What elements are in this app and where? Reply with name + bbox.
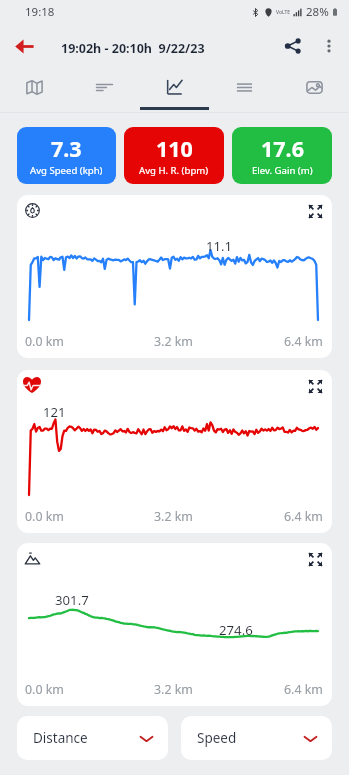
staticText: 28% xyxy=(306,4,329,20)
staticText: 7.3 xyxy=(51,134,82,163)
staticText: 121 xyxy=(43,403,66,421)
staticText: 274.6 xyxy=(219,621,253,639)
staticText: 19:02h - 20:10h 9/22/23 xyxy=(61,40,205,57)
staticText: 0.0 km xyxy=(25,508,64,525)
staticText: 6.4 km xyxy=(284,508,323,525)
button[interactable]: Speed xyxy=(181,716,332,760)
staticText: 110 xyxy=(156,134,193,163)
staticText: VoLTE xyxy=(276,9,291,16)
button[interactable]: Expand chart xyxy=(17,370,332,533)
button[interactable]: Splits xyxy=(69,65,139,113)
staticText: Distance xyxy=(33,729,88,747)
button[interactable]: Back xyxy=(5,27,43,65)
staticText: 301.7 xyxy=(55,591,89,609)
staticText: Avg Speed (kph) xyxy=(30,164,103,177)
staticText: 19:18 xyxy=(25,4,55,20)
button[interactable]: Expand chart xyxy=(17,195,332,358)
button[interactable]: 110 xyxy=(124,127,224,184)
button[interactable]: Expand chart xyxy=(301,197,329,225)
staticText: Avg H. R. (bpm) xyxy=(139,164,209,177)
button[interactable]: 7.3 xyxy=(17,127,116,184)
staticText: Speed xyxy=(197,729,237,747)
button[interactable]: Expand chart xyxy=(301,545,329,573)
staticText: 0.0 km xyxy=(25,333,64,350)
staticText: 0.0 km xyxy=(25,681,64,698)
button[interactable]: Charts xyxy=(139,65,209,113)
button[interactable]: Details xyxy=(209,65,279,113)
button[interactable]: Distance xyxy=(17,716,168,760)
staticText: 3.2 km xyxy=(154,508,193,525)
staticText: 3.2 km xyxy=(154,333,193,350)
staticText: 6.4 km xyxy=(284,681,323,698)
button[interactable]: Expand chart xyxy=(301,372,329,400)
staticText: Elev. Gain (m) xyxy=(252,164,313,177)
button[interactable]: Photos xyxy=(279,65,349,113)
staticText: 11.1 xyxy=(206,237,233,255)
staticText: 3.2 km xyxy=(154,681,193,698)
button[interactable]: More options xyxy=(312,29,346,63)
staticText: 17.6 xyxy=(261,134,304,163)
staticText: 6.4 km xyxy=(284,333,323,350)
button[interactable]: Expand chart xyxy=(17,543,332,706)
button[interactable]: Share xyxy=(274,27,312,65)
button[interactable]: Map xyxy=(0,65,69,113)
button[interactable]: 17.6 xyxy=(232,127,332,184)
